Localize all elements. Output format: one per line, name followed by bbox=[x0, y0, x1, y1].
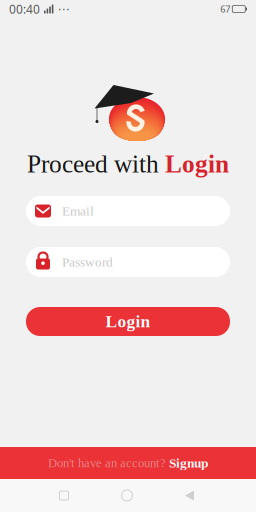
staticText: Login bbox=[105, 312, 150, 331]
staticText: ⋯ bbox=[57, 2, 69, 16]
staticText: Proceed with bbox=[27, 150, 165, 178]
button[interactable]: Password bbox=[26, 247, 230, 277]
staticText: 67 bbox=[220, 3, 230, 15]
button[interactable]: Back bbox=[177, 479, 203, 512]
staticText: Don't have an account? bbox=[48, 456, 166, 470]
staticText: Email bbox=[62, 204, 94, 218]
staticText: Password bbox=[62, 255, 113, 269]
button[interactable]: Login bbox=[26, 307, 230, 336]
button[interactable]: Recent apps bbox=[51, 479, 77, 512]
staticText: Login bbox=[165, 150, 229, 178]
staticText: 00:40 bbox=[9, 1, 40, 17]
button[interactable]: Home bbox=[114, 479, 140, 512]
button[interactable]: Don't have an account? bbox=[0, 447, 256, 479]
button[interactable]: Email bbox=[26, 196, 230, 226]
staticText: Signup bbox=[169, 456, 208, 470]
